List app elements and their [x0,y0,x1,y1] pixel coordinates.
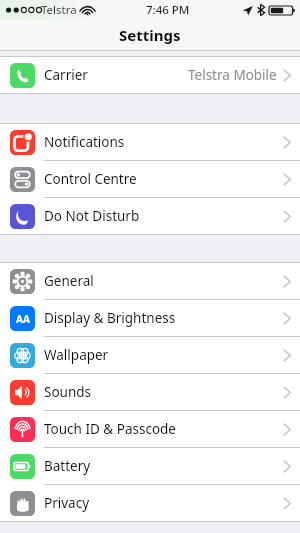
staticText: Privacy [44,494,90,512]
button[interactable]: Notifications [0,124,300,160]
button[interactable]: Control Centre [0,161,300,197]
staticText: Carrier [44,66,88,84]
staticText: Settings [119,25,181,45]
staticText: Telstra Mobile [188,66,277,84]
button[interactable]: General [0,263,300,299]
staticText: Sounds [44,383,92,401]
staticText: Touch ID & Passcode [44,420,176,438]
button[interactable]: Do Not Disturb [0,198,300,234]
staticText: Notifications [44,133,125,151]
button[interactable]: Touch ID & Passcode [0,411,300,447]
button[interactable]: Wallpaper [0,337,300,373]
staticText: Do Not Disturb [44,207,140,225]
button[interactable]: AA [0,300,300,336]
button[interactable]: Privacy [0,485,300,521]
staticText: 7:46 PM [146,2,190,18]
button[interactable]: Sounds [0,374,300,410]
staticText: Battery [44,457,91,475]
button[interactable]: Carrier [0,57,300,93]
staticText: Control Centre [44,170,137,188]
staticText: Display & Brightness [44,309,176,327]
button[interactable]: Battery [0,448,300,484]
staticText: General [44,272,94,290]
staticText: Telstra [41,2,77,18]
staticText: AA [16,312,30,326]
staticText: Wallpaper [44,346,109,364]
